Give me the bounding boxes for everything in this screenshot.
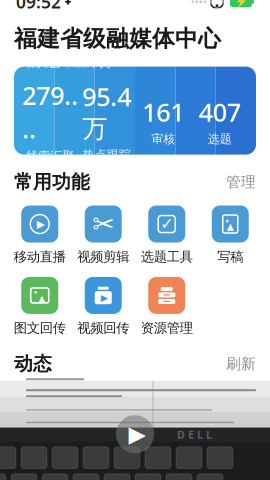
staticText: ⚡: [234, 0, 247, 8]
button[interactable]: ▲: [198, 205, 262, 265]
button[interactable]: 管理: [226, 173, 256, 191]
staticText: ▲: [38, 293, 45, 304]
button[interactable]: ▶: [8, 205, 71, 265]
button[interactable]: 刷新: [226, 355, 256, 373]
staticText: D E L L: [177, 428, 212, 442]
staticText: ▶: [128, 421, 145, 447]
button[interactable]: 播放视频: [0, 385, 270, 480]
staticText: ✂: [92, 209, 114, 239]
staticText: ▶: [101, 292, 108, 303]
staticText: 审核: [151, 132, 175, 146]
staticText: 图文回传: [14, 320, 66, 336]
staticText: 线索汇聚: [26, 149, 74, 163]
staticText: 95.4万: [82, 80, 131, 144]
staticText: 写稿: [217, 248, 243, 265]
staticText: ▶: [37, 218, 45, 230]
staticText: 常用功能: [14, 171, 90, 193]
staticText: ▲: [227, 221, 234, 232]
button[interactable]: ▲: [8, 277, 71, 336]
button[interactable]: 资源管理: [135, 277, 198, 336]
staticText: 福建省级融媒体中心: [14, 25, 221, 53]
staticText: 培训会，上午好: [22, 54, 113, 70]
staticText: 407: [199, 95, 241, 129]
staticText: ✓: [160, 215, 173, 233]
staticText: 161: [142, 95, 184, 129]
staticText: 279....: [22, 78, 78, 146]
staticText: 选题工具: [141, 248, 193, 265]
button[interactable]: ▶: [71, 277, 135, 336]
staticText: 视频剪辑: [77, 248, 129, 265]
staticText: 视频回传: [77, 320, 129, 336]
button[interactable]: ✓: [135, 205, 198, 265]
staticText: 移动直播: [14, 248, 66, 265]
staticText: 09:52: [16, 0, 61, 13]
staticText: 选题: [208, 132, 232, 146]
staticText: 刷新: [226, 355, 256, 373]
button[interactable]: ✂: [71, 205, 135, 265]
staticText: 热点跟踪: [83, 147, 131, 162]
staticText: 动态: [14, 352, 52, 375]
staticText: 资源管理: [141, 320, 193, 336]
staticText: 管理: [226, 173, 256, 191]
